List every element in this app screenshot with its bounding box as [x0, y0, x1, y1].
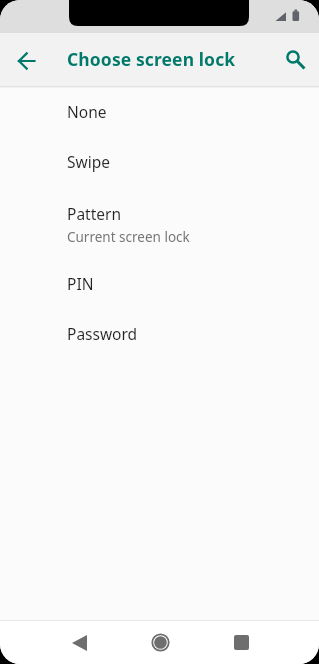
staticText: PIN: [67, 273, 94, 294]
staticText: None: [67, 101, 107, 122]
staticText: Pattern: [67, 203, 121, 224]
button[interactable]: [217, 621, 265, 664]
button[interactable]: None: [0, 88, 319, 138]
staticText: Current screen lock: [67, 228, 190, 246]
button[interactable]: [4, 38, 48, 82]
button[interactable]: Swipe: [0, 138, 319, 188]
staticText: Password: [67, 323, 138, 344]
staticText: Choose screen lock: [67, 47, 236, 71]
button[interactable]: [136, 621, 184, 664]
button[interactable]: Password: [0, 310, 319, 360]
button[interactable]: PIN: [0, 260, 319, 310]
button[interactable]: [55, 621, 103, 664]
button[interactable]: Pattern: [0, 188, 319, 260]
staticText: Swipe: [67, 151, 110, 172]
button[interactable]: [271, 38, 315, 82]
